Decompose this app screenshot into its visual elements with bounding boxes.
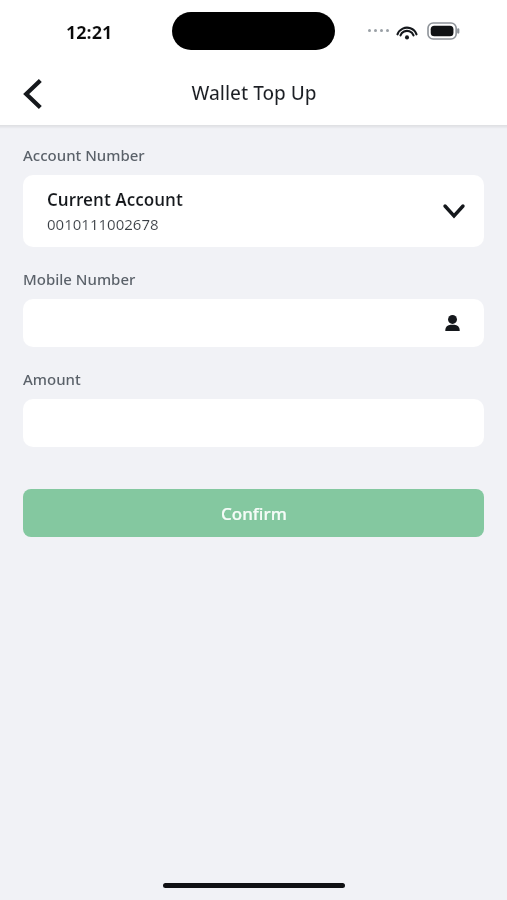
button[interactable]: Pick contact	[23, 299, 484, 347]
button[interactable]: Current Account	[23, 175, 484, 247]
staticText: Amount	[23, 369, 81, 389]
staticText: Mobile Number	[23, 269, 136, 289]
staticText: Current Account	[47, 188, 183, 211]
staticText: 12:21	[66, 20, 113, 45]
button[interactable]: Pick contact	[434, 305, 470, 341]
button[interactable]: Back	[8, 70, 56, 118]
staticText: Confirm	[221, 502, 287, 525]
staticText: 0010111002678	[47, 214, 159, 234]
staticText: Wallet Top Up	[191, 80, 317, 106]
staticText: Account Number	[23, 145, 145, 165]
button[interactable]: Confirm	[23, 489, 484, 537]
